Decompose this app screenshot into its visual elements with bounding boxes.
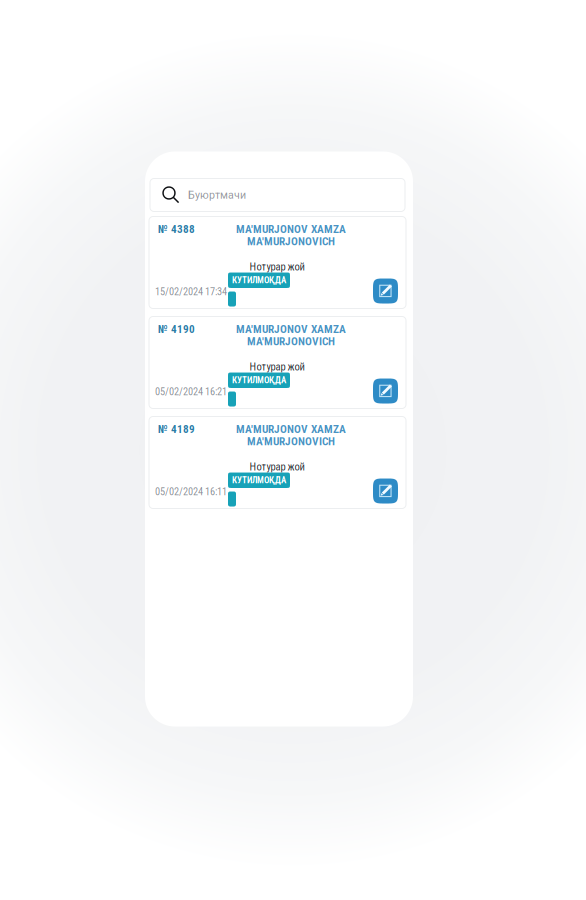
staticText: MA'MURJONOV XAMZA xyxy=(236,322,346,336)
button[interactable]: Edit order xyxy=(373,278,398,303)
staticText: № 4190 xyxy=(158,322,195,336)
staticText: Буюртмачи xyxy=(188,189,246,201)
staticText: MA'MURJONOV XAMZA xyxy=(236,222,346,236)
staticText: № 4388 xyxy=(158,222,195,236)
staticText: MA'MURJONOVICH xyxy=(247,235,335,248)
button[interactable]: Edit order xyxy=(373,478,398,503)
button[interactable]: Edit order xyxy=(373,378,398,403)
staticText: MA'MURJONOVICH xyxy=(247,435,335,448)
staticText: КУТИЛМОҚДА xyxy=(232,475,286,485)
button[interactable]: № 4190 xyxy=(149,316,406,408)
staticText: 05/02/2024 16:21 xyxy=(155,385,227,398)
staticText: 15/02/2024 17:34 xyxy=(155,285,227,298)
staticText: Нотурар жой xyxy=(249,360,304,373)
staticText: Нотурар жой xyxy=(249,460,304,473)
staticText: MA'MURJONOVICH xyxy=(247,335,335,348)
staticText: КУТИЛМОҚДА xyxy=(232,275,286,285)
staticText: КУТИЛМОҚДА xyxy=(232,375,286,385)
staticText: MA'MURJONOV XAMZA xyxy=(236,422,346,436)
button[interactable]: Буюртмачи xyxy=(150,178,405,211)
staticText: № 4189 xyxy=(158,422,195,436)
button[interactable]: № 4189 xyxy=(149,416,406,508)
staticText: 05/02/2024 16:11 xyxy=(155,485,227,498)
button[interactable]: № 4388 xyxy=(149,216,406,308)
staticText: Нотурар жой xyxy=(249,260,304,273)
